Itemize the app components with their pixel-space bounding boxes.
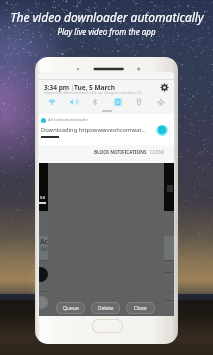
button[interactable]: Queue xyxy=(56,302,85,314)
staticText: Tue, 5 March xyxy=(74,83,115,92)
button[interactable]: Download progress xyxy=(156,124,168,136)
staticText: Queue xyxy=(63,305,79,312)
button[interactable]: Home xyxy=(92,319,123,333)
staticText: 0:0 xyxy=(40,195,45,200)
staticText: 3:34 pm xyxy=(44,83,70,92)
button[interactable]: BLOCK NOTIFICATIONS xyxy=(94,149,147,155)
button[interactable]: CLEAR xyxy=(150,149,165,155)
button[interactable]: Wi-Fi xyxy=(45,95,58,108)
button[interactable]: Settings xyxy=(159,82,170,93)
staticText: The video downloader automatically xyxy=(10,9,204,25)
staticText: httpsvhat dilmoad bnot olck ajc deegan.c… xyxy=(44,90,142,95)
button[interactable]: Delete xyxy=(91,302,120,314)
staticText: Ac xyxy=(40,237,49,247)
staticText: Close xyxy=(134,305,147,312)
staticText: Vid xyxy=(40,246,48,253)
button[interactable]: Close xyxy=(126,302,155,314)
staticText: All videodownloader xyxy=(48,117,89,123)
button[interactable]: Bluetooth xyxy=(88,95,101,108)
button[interactable]: Auto rotate xyxy=(111,95,124,108)
staticText: Delete xyxy=(98,305,114,312)
button[interactable]: Flashlight xyxy=(132,95,145,108)
staticText: Play live video from the app xyxy=(57,26,156,37)
staticText: BLOCK NOTIFICATIONS xyxy=(94,149,147,155)
staticText: Downloading httpswwwveohcomwat... xyxy=(41,126,147,134)
button[interactable]: Sound xyxy=(66,95,79,108)
staticText: CLEAR xyxy=(150,149,165,155)
button[interactable]: Airplane mode xyxy=(154,95,167,108)
